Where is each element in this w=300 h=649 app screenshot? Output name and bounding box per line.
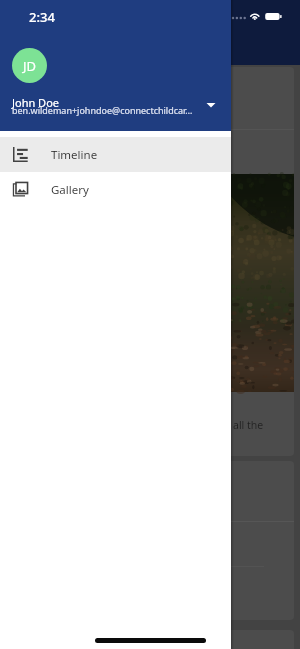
button[interactable]: Switch account xyxy=(202,96,220,114)
button[interactable]: Timeline xyxy=(0,137,231,172)
staticText: 2:34 xyxy=(29,8,55,26)
staticText: all the xyxy=(233,418,264,432)
staticText: ben.wildeman+johndoe@connectchildcar… xyxy=(12,104,193,116)
staticText: Gallery xyxy=(51,182,89,198)
button[interactable]: Gallery xyxy=(0,172,231,207)
staticText: Timeline xyxy=(51,147,98,163)
staticText: John Doe xyxy=(12,95,60,110)
staticText: JD xyxy=(23,57,37,75)
button[interactable]: Account avatar xyxy=(12,48,47,83)
